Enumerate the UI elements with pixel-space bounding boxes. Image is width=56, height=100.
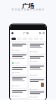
staticText: 广场 [22,1,34,10]
button[interactable] [29,65,45,77]
button[interactable]: Notifications [41,32,45,34]
button[interactable] [11,89,27,98]
button[interactable]: Search [39,32,41,34]
button[interactable]: Category filter [11,38,16,40]
button[interactable]: Profile [11,32,13,34]
button[interactable] [29,43,45,54]
staticText: 发现真实有趣的生活瞬间 [11,8,44,11]
button[interactable] [11,43,27,52]
button[interactable] [29,90,45,99]
button[interactable] [29,55,45,63]
button[interactable]: Category filter [29,38,33,40]
button[interactable] [11,66,27,75]
button[interactable]: Category filter [22,38,27,40]
button[interactable] [11,76,27,88]
button[interactable]: Category filter [39,38,43,40]
button[interactable] [11,53,27,65]
staticText: 广场 [23,31,29,35]
button[interactable] [29,78,45,89]
